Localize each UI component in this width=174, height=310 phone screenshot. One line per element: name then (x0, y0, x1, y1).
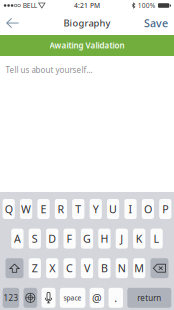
button[interactable]: Q (3, 199, 15, 219)
staticText: Save (144, 16, 168, 30)
button[interactable]: Shift (5, 258, 23, 278)
staticText: C (66, 261, 73, 275)
button[interactable]: K (133, 229, 145, 249)
button[interactable]: Z (29, 258, 41, 278)
staticText: O (144, 202, 152, 216)
staticText: Y (93, 202, 99, 216)
staticText: BELL (23, 1, 37, 10)
staticText: I (128, 202, 132, 216)
staticText: N (118, 261, 126, 275)
staticText: Awaiting Validation (49, 40, 124, 51)
staticText: L (154, 231, 160, 246)
staticText: Biography (63, 17, 110, 29)
button[interactable]: H (98, 229, 110, 249)
staticText: D (48, 231, 56, 246)
staticText: F (67, 231, 73, 246)
staticText: 100% (138, 1, 156, 10)
staticText: 123 (3, 292, 18, 303)
staticText: Z (32, 261, 38, 275)
staticText: U (109, 202, 117, 216)
staticText: . (114, 291, 117, 305)
staticText: M (134, 261, 144, 275)
staticText: G (83, 231, 91, 246)
button[interactable]: Save (134, 11, 174, 35)
staticText: Tell us about yourself... (5, 64, 92, 75)
button[interactable]: F (63, 229, 76, 249)
button[interactable]: I (124, 199, 137, 219)
button[interactable]: T (72, 199, 84, 219)
button[interactable]: S (29, 229, 41, 249)
button[interactable]: D (46, 229, 58, 249)
button[interactable]: . (108, 288, 123, 308)
button[interactable]: space (60, 288, 85, 308)
button[interactable]: J (116, 229, 128, 249)
staticText: space (64, 293, 82, 302)
button[interactable]: C (63, 258, 76, 278)
button[interactable]: V (81, 258, 93, 278)
button[interactable]: @ (90, 288, 104, 308)
button[interactable]: Delete (150, 258, 168, 278)
staticText: 4:21 PM (74, 1, 100, 10)
staticText: R (57, 202, 64, 216)
button[interactable]: O (142, 199, 154, 219)
staticText: V (84, 261, 90, 275)
button[interactable]: Dictate (41, 288, 55, 308)
button[interactable]: return (127, 288, 171, 308)
button[interactable]: U (107, 199, 119, 219)
button[interactable]: A (11, 229, 23, 249)
button[interactable]: L (150, 229, 163, 249)
staticText: H (100, 231, 108, 246)
staticText: P (162, 202, 168, 216)
button[interactable]: 123 (3, 288, 19, 308)
button[interactable]: E (37, 199, 50, 219)
staticText: A (14, 231, 21, 246)
staticText: Q (5, 202, 13, 216)
button[interactable]: R (55, 199, 67, 219)
button[interactable]: G (81, 229, 93, 249)
button[interactable]: B (98, 258, 110, 278)
button[interactable]: Y (90, 199, 102, 219)
button[interactable]: Next keyboard (23, 288, 37, 308)
staticText: E (40, 202, 46, 216)
staticText: W (21, 202, 31, 216)
staticText: X (49, 261, 55, 275)
button[interactable]: M (133, 258, 145, 278)
staticText: S (32, 231, 38, 246)
staticText: K (136, 231, 143, 246)
button[interactable]: W (20, 199, 32, 219)
staticText: @ (92, 291, 102, 305)
staticText: return (137, 292, 161, 303)
staticText: J (120, 231, 123, 246)
staticText: T (75, 202, 81, 216)
staticText: B (101, 261, 108, 275)
button[interactable]: Back (0, 11, 29, 35)
button[interactable]: X (46, 258, 58, 278)
button[interactable]: N (116, 258, 128, 278)
button[interactable]: P (159, 199, 171, 219)
